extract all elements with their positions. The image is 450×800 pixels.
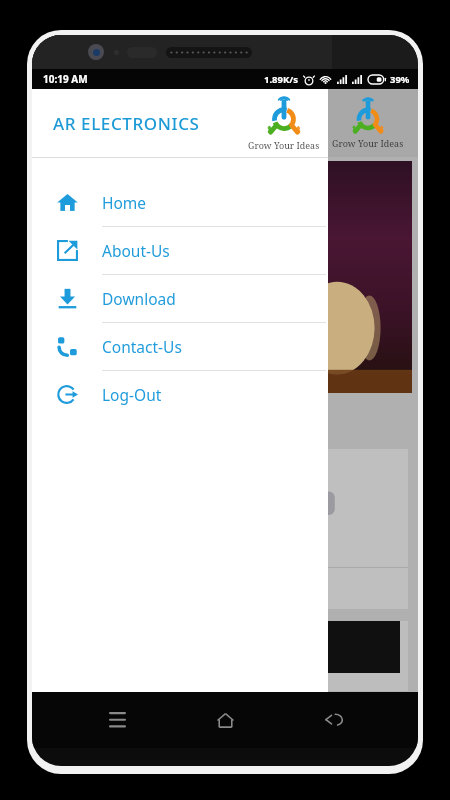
staticText: About-Us (102, 240, 170, 261)
other: Download (57, 288, 78, 309)
button[interactable]: Home (201, 696, 249, 744)
staticText: Log-Out (102, 384, 162, 405)
button[interactable]: Recent apps (93, 696, 141, 744)
staticText: AR ELECTRONICS (53, 112, 200, 135)
button[interactable]: About-Us (32, 227, 328, 274)
staticText: Home (102, 192, 147, 213)
other: Contact-Us (57, 336, 78, 357)
staticText: 1.89K/s (264, 73, 298, 86)
button[interactable]: Contact-Us (32, 323, 328, 370)
staticText: Grow Your Ideas (332, 137, 404, 149)
button[interactable]: Download (32, 275, 328, 322)
other: Log-Out (57, 384, 78, 405)
staticText: 39% (390, 73, 410, 86)
staticText: Grow Your Ideas (248, 139, 320, 151)
button[interactable]: Log-Out (32, 371, 328, 418)
staticText: Contact-Us (102, 336, 182, 357)
other: About-Us (57, 240, 78, 261)
staticText: Download (102, 288, 176, 309)
button[interactable]: Back (310, 696, 358, 744)
other: Home (57, 192, 78, 213)
staticText: 10:19 AM (43, 72, 88, 86)
button[interactable]: Home (32, 179, 328, 226)
